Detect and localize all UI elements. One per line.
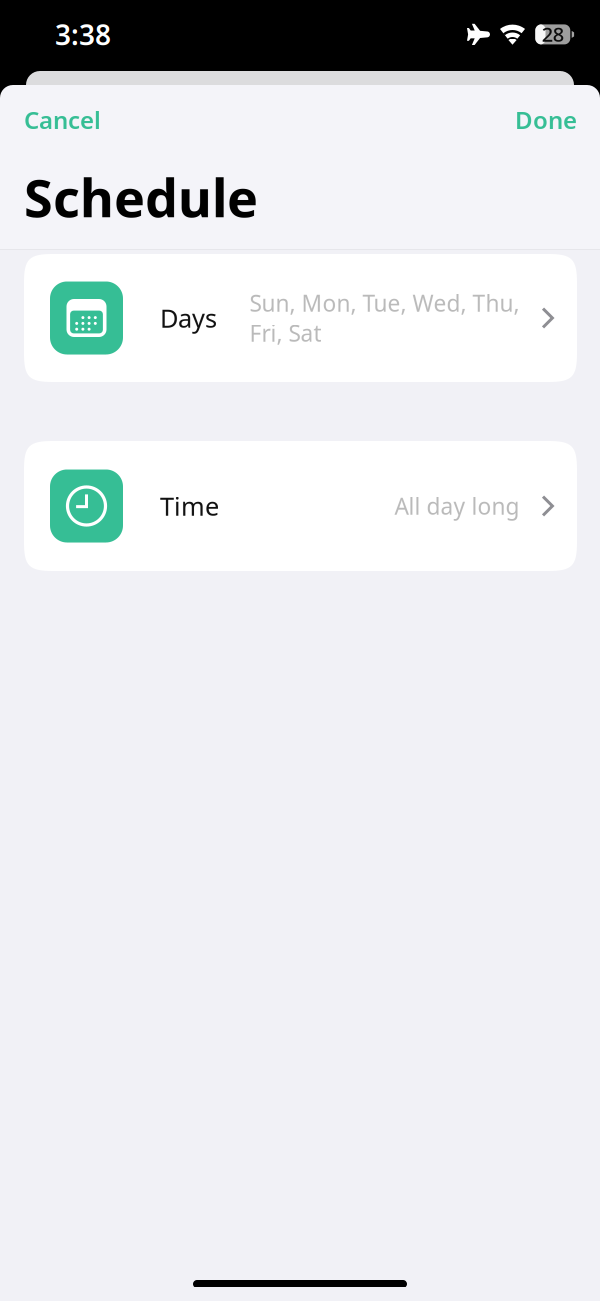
staticText: All day long <box>394 491 519 521</box>
button[interactable]: Days <box>24 254 577 382</box>
staticText: Sun, Mon, Tue, Wed, Thu, Fri, Sat <box>249 288 519 348</box>
staticText: 28 <box>542 21 564 47</box>
staticText: Cancel <box>24 104 101 135</box>
button[interactable]: Done <box>499 93 600 146</box>
button[interactable]: Time <box>24 441 577 571</box>
staticText: Schedule <box>24 162 258 231</box>
staticText: Days <box>160 301 217 335</box>
staticText: Done <box>515 104 577 135</box>
staticText: 3:38 <box>55 16 111 53</box>
staticText: Time <box>160 489 219 523</box>
button[interactable]: Cancel <box>0 93 117 146</box>
